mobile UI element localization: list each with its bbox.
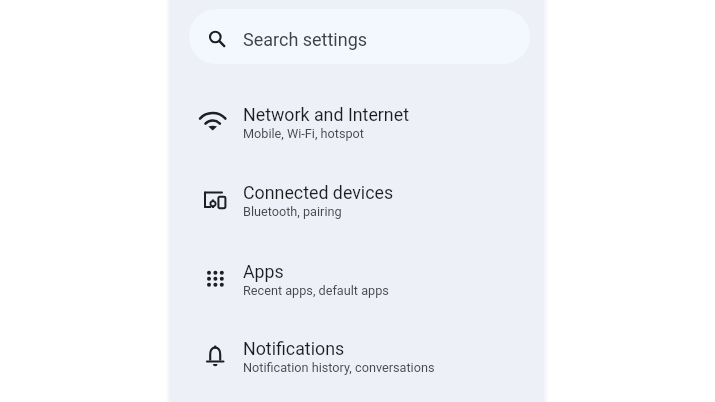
button[interactable]: Network and Internet — [168, 82, 546, 160]
button[interactable]: Notifications — [168, 316, 546, 394]
staticText: Notification history, conversations — [243, 360, 435, 375]
staticText: Notifications — [243, 338, 345, 359]
staticText: Recent apps, default apps — [243, 283, 389, 298]
staticText: Mobile, Wi-Fi, hotspot — [243, 126, 365, 141]
staticText: Network and Internet — [243, 104, 409, 125]
staticText: Apps — [243, 261, 284, 282]
staticText: Search settings — [243, 29, 368, 50]
button[interactable]: Search settings — [189, 9, 530, 64]
staticText: Connected devices — [243, 182, 394, 203]
button[interactable]: Connected devices — [168, 160, 546, 238]
button[interactable]: Apps — [168, 239, 546, 317]
staticText: Bluetooth, pairing — [243, 204, 342, 219]
